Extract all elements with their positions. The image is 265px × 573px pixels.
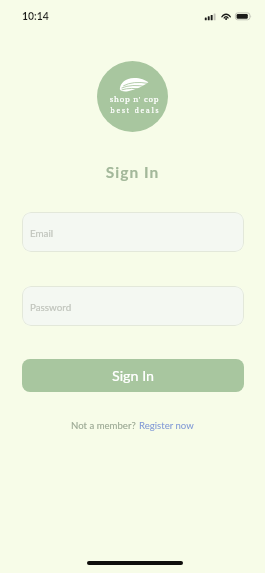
- staticText: Email: [30, 227, 54, 239]
- staticText: Register now: [139, 420, 194, 432]
- button[interactable]: Password: [22, 286, 244, 326]
- button[interactable]: Register now: [139, 420, 194, 432]
- button[interactable]: Sign In: [22, 359, 244, 392]
- staticText: Sign In: [0, 163, 265, 182]
- staticText: 10:14: [22, 10, 49, 22]
- staticText: Not a member?: [71, 420, 139, 432]
- staticText: Password: [30, 301, 72, 313]
- staticText: Sign In: [112, 367, 155, 384]
- staticText: best deals: [3, 106, 265, 115]
- staticText: shop n' cop: [2, 94, 265, 105]
- button[interactable]: Email: [22, 212, 244, 252]
- other: Status icons: [204, 11, 253, 22]
